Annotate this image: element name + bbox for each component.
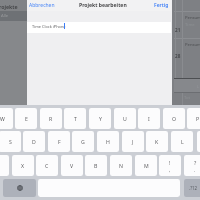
staticText: H <box>106 138 110 145</box>
staticText: E <box>25 115 28 122</box>
staticText: X <box>21 162 25 169</box>
button[interactable]: F <box>48 131 70 152</box>
button[interactable]: K <box>146 131 168 152</box>
button[interactable]: S <box>0 131 21 152</box>
staticText: ? <box>194 159 197 166</box>
button[interactable]: B <box>85 155 107 176</box>
staticText: Pensum 4h <box>185 15 200 21</box>
staticText: . <box>194 167 196 173</box>
button[interactable]: ? <box>184 155 200 176</box>
button[interactable]: Y <box>89 108 111 129</box>
staticText: N <box>119 162 123 169</box>
staticText: , <box>169 167 171 173</box>
button[interactable]: J <box>122 131 144 152</box>
button[interactable]: Abbrechen <box>29 1 59 10</box>
staticText: T <box>74 115 77 122</box>
button[interactable]: H <box>97 131 119 152</box>
staticText: ! <box>169 159 171 166</box>
button[interactable] <box>0 0 27 11</box>
button[interactable]: N <box>110 155 132 176</box>
button[interactable]: .?12 <box>184 179 200 197</box>
staticText: P <box>196 115 200 122</box>
staticText: D <box>32 138 36 145</box>
staticText: V <box>70 162 74 169</box>
staticText: O <box>172 115 177 122</box>
button[interactable]: V <box>61 155 83 176</box>
button[interactable]: U <box>114 108 136 129</box>
button[interactable] <box>172 0 200 105</box>
button[interactable]: T <box>64 108 86 129</box>
button[interactable] <box>27 0 171 105</box>
button[interactable]: L <box>171 131 193 152</box>
staticText: F <box>58 138 61 145</box>
staticText: Projekt bearbeiten <box>79 2 127 9</box>
staticText: C <box>45 162 49 169</box>
button[interactable]: R <box>40 108 62 129</box>
button[interactable]: D <box>23 131 45 152</box>
button[interactable]: Z <box>0 155 9 176</box>
button[interactable] <box>0 0 27 105</box>
button[interactable]: I <box>138 108 160 129</box>
button[interactable]: Return <box>197 131 200 152</box>
staticText: R <box>49 115 53 122</box>
staticText: 21 <box>175 27 181 33</box>
staticText: B <box>94 162 98 169</box>
button[interactable]: E <box>15 108 37 129</box>
button[interactable] <box>174 79 200 93</box>
staticText: G <box>81 138 85 145</box>
button[interactable]: ! <box>159 155 181 176</box>
button[interactable] <box>27 0 171 11</box>
button[interactable] <box>27 22 171 33</box>
staticText: J <box>132 138 134 145</box>
staticText: L <box>181 138 184 145</box>
staticText: M <box>144 162 149 169</box>
button[interactable]: Fertig <box>148 1 169 10</box>
staticText: U <box>123 115 127 122</box>
button[interactable]: M <box>135 155 157 176</box>
button[interactable]: P <box>187 108 200 129</box>
staticText: .?12 <box>189 185 198 191</box>
button[interactable] <box>0 105 200 200</box>
staticText: rojekte <box>0 3 18 10</box>
button[interactable]: X <box>12 155 34 176</box>
staticText: W <box>0 115 5 122</box>
staticText: Y <box>99 115 102 122</box>
staticText: I <box>148 115 150 122</box>
button[interactable]: Change keyboard <box>3 179 36 197</box>
button[interactable]: W <box>0 108 13 129</box>
staticText: S <box>9 138 12 145</box>
button[interactable]: G <box>72 131 94 152</box>
staticText: 28 <box>175 53 181 59</box>
button[interactable]: O <box>163 108 185 129</box>
staticText: Abbrechen <box>29 2 55 9</box>
staticText: Fertig <box>154 2 169 9</box>
staticText: Time Clock iPhone <box>32 24 66 29</box>
staticText: K <box>155 138 159 145</box>
button[interactable]: C <box>36 155 58 176</box>
staticText: Alle <box>1 13 9 19</box>
staticText: Pensum 4h <box>185 42 200 48</box>
button[interactable] <box>172 93 200 106</box>
button[interactable] <box>0 11 27 21</box>
